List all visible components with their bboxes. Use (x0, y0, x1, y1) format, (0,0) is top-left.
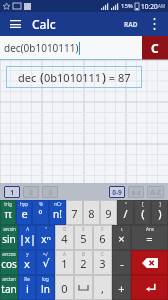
staticText: dec(0b1010111) (4, 41, 79, 55)
staticText: % (39, 201, 43, 207)
staticText: i (26, 281, 29, 296)
button[interactable]: B (74, 250, 93, 275)
staticText: ' (45, 226, 47, 232)
staticText: C (151, 40, 159, 56)
button[interactable]: dec(0b1010111) (0, 36, 142, 60)
button[interactable]: nCr (49, 200, 66, 225)
button[interactable]: ι (112, 225, 131, 250)
button[interactable]: trig (0, 200, 16, 225)
staticText: 1 (61, 256, 68, 271)
button[interactable]: arcsin (0, 225, 18, 250)
staticText: hyp (20, 201, 28, 207)
staticText: 0b1010111 (44, 70, 102, 85)
button[interactable]: - (112, 250, 131, 275)
staticText: B (82, 251, 85, 257)
button[interactable]: D (55, 225, 74, 250)
staticText: arcsin (3, 226, 16, 232)
staticText: a-z (131, 188, 141, 197)
button[interactable]: 1 (4, 186, 20, 198)
staticText: 4 (61, 231, 68, 246)
staticText: 3 (48, 188, 52, 197)
staticText: 8 (88, 206, 95, 221)
staticText: ° (125, 201, 127, 207)
button[interactable]: dec (6, 66, 142, 88)
staticText: Calc (32, 16, 56, 32)
staticText: dec (18, 70, 40, 85)
staticText: x (24, 256, 30, 271)
staticText: 7 (71, 206, 78, 221)
staticText: ⁿ√ (43, 251, 48, 257)
staticText: tan (1, 282, 17, 296)
staticText: A (63, 251, 66, 257)
staticText: F (101, 226, 104, 232)
staticText: = (146, 231, 153, 246)
staticText: 3 (99, 256, 106, 271)
button[interactable]: ° (117, 200, 134, 225)
button[interactable]: 8 (83, 200, 100, 225)
staticText: + (118, 281, 125, 296)
button[interactable]: arctan (0, 275, 18, 300)
button[interactable]: Λ (18, 225, 36, 250)
button[interactable]: ' (36, 225, 55, 250)
staticText: 5 (80, 231, 87, 246)
staticText: ) (102, 68, 106, 86)
staticText: arctan (2, 276, 16, 282)
staticText: log (42, 276, 49, 282)
button[interactable]: 3 (42, 186, 58, 198)
button[interactable]: E (74, 225, 93, 250)
button[interactable]: , (93, 275, 112, 300)
button[interactable]: Space (74, 275, 93, 300)
button[interactable]: 0-9 (109, 186, 125, 198)
staticText: 15% (121, 2, 133, 10)
staticText: e (21, 206, 28, 221)
button[interactable]: F (93, 225, 112, 250)
staticText: ι (121, 226, 123, 232)
button[interactable]: Re (18, 275, 36, 300)
staticText: ( (40, 68, 44, 86)
staticText: 2 (29, 188, 33, 197)
staticText: D (63, 226, 67, 232)
button[interactable]: RAD (120, 16, 142, 33)
button[interactable]: hyp (16, 200, 32, 225)
staticText: 0-9 (112, 188, 122, 197)
staticText: |x| (19, 232, 36, 246)
button[interactable]: A (55, 250, 74, 275)
staticText: , (101, 281, 104, 296)
button[interactable]: ] (151, 200, 168, 225)
button[interactable]: Enter (131, 275, 168, 300)
staticText: 0 (61, 281, 68, 296)
staticText: xⁿ (41, 232, 51, 246)
button[interactable]: [ (134, 200, 151, 225)
button[interactable]: A-Z (147, 186, 164, 198)
button[interactable]: Open navigation menu (6, 15, 24, 33)
button[interactable]: + (112, 275, 131, 300)
staticText: 2 (80, 256, 87, 271)
staticText: trig (4, 201, 12, 207)
button[interactable]: y (18, 250, 36, 275)
staticText: 9 (105, 206, 112, 221)
button[interactable]: More options (146, 16, 162, 32)
button[interactable]: Ans (131, 225, 168, 250)
button[interactable]: 0 (55, 275, 74, 300)
button[interactable]: Delete (131, 250, 168, 275)
staticText: / (123, 206, 128, 221)
button[interactable]: C (142, 36, 168, 60)
button[interactable]: 7 (66, 200, 83, 225)
staticText: ) (158, 206, 162, 221)
staticText: ° (38, 207, 43, 221)
staticText: arccos (2, 251, 16, 257)
staticText: C (101, 251, 104, 257)
button[interactable]: arccos (0, 250, 18, 275)
button[interactable]: log (36, 275, 55, 300)
button[interactable]: a-z (128, 186, 144, 198)
button[interactable]: ⁿ√ (36, 250, 55, 275)
staticText: = 87 (106, 70, 131, 85)
button[interactable]: 9 (100, 200, 117, 225)
staticText: 6 (99, 231, 106, 246)
button[interactable]: % (32, 200, 49, 225)
button[interactable]: 2 (23, 186, 39, 198)
staticText: RAD (124, 20, 138, 29)
staticText: nCr (54, 201, 62, 207)
button[interactable]: C (93, 250, 112, 275)
staticText: Re (24, 276, 30, 282)
